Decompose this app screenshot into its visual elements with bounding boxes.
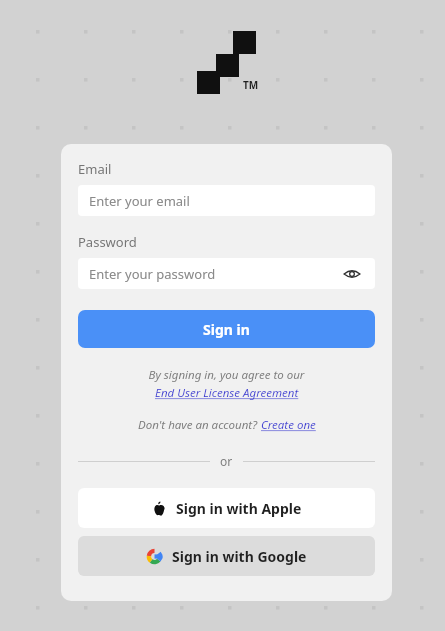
button[interactable]: Enter your email xyxy=(78,185,375,216)
button[interactable]: Create one xyxy=(261,417,316,433)
staticText: End User License Agreement xyxy=(155,385,299,401)
button[interactable]: Sign in with Google xyxy=(78,536,375,576)
staticText: or xyxy=(220,453,233,469)
button[interactable]: Sign in with Apple xyxy=(78,488,375,528)
staticText: Sign in with Google xyxy=(172,547,307,566)
staticText: Sign in xyxy=(203,320,250,339)
button[interactable]: Enter your password xyxy=(78,258,375,289)
button[interactable]: Sign in xyxy=(78,310,375,348)
button[interactable]: End User License Agreement xyxy=(155,385,299,401)
staticText: Enter your email xyxy=(89,192,190,210)
staticText: Password xyxy=(78,233,137,251)
staticText: TM xyxy=(243,78,259,92)
staticText: Enter your password xyxy=(89,265,216,283)
staticText: Don't have an account? xyxy=(138,417,261,433)
button[interactable]: Show password xyxy=(340,262,364,286)
staticText: Create one xyxy=(261,417,316,433)
staticText: Sign in with Apple xyxy=(176,499,302,518)
staticText: Email xyxy=(78,160,112,178)
staticText: By signing in, you agree to our xyxy=(78,367,375,383)
